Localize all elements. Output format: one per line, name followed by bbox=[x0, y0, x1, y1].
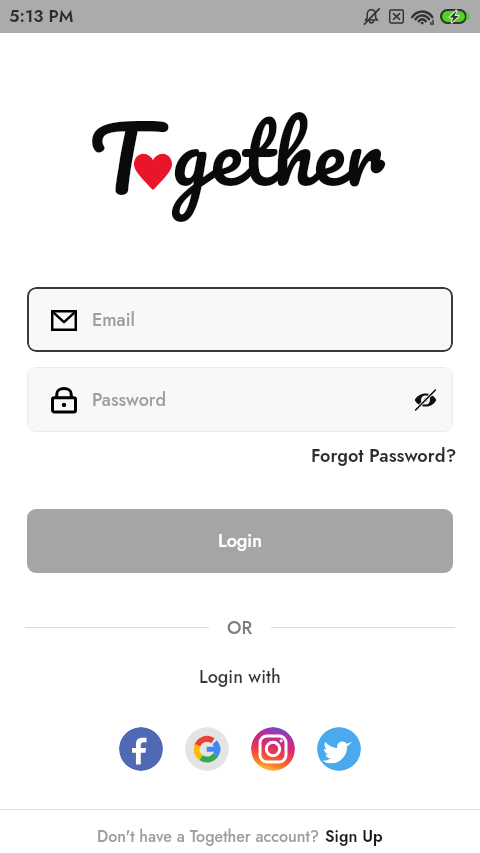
button[interactable]: Login bbox=[27, 509, 453, 573]
staticText: 5:13 PM bbox=[9, 4, 74, 29]
staticText: Don't have a Together account? bbox=[97, 825, 325, 848]
button[interactable]: Sign in with Facebook bbox=[119, 727, 163, 771]
staticText: T bbox=[89, 80, 151, 235]
button[interactable]: Sign in with Google bbox=[185, 727, 229, 771]
staticText: Email bbox=[92, 307, 135, 333]
button[interactable]: Password bbox=[27, 367, 453, 432]
button[interactable]: Email bbox=[27, 287, 453, 352]
button[interactable]: Show password bbox=[403, 378, 447, 422]
staticText: Login with bbox=[199, 664, 281, 690]
button[interactable]: Sign in with Twitter bbox=[317, 727, 361, 771]
button[interactable]: Forgot Password? bbox=[311, 443, 457, 469]
staticText: gether bbox=[172, 82, 385, 222]
staticText: Sign Up bbox=[325, 825, 383, 848]
button[interactable]: Sign in with Instagram bbox=[251, 727, 295, 771]
button[interactable]: Sign Up bbox=[325, 825, 383, 848]
staticText: Forgot Password? bbox=[311, 443, 457, 469]
staticText: Password bbox=[92, 387, 167, 413]
staticText: OR bbox=[227, 615, 253, 639]
staticText: Login bbox=[218, 528, 262, 554]
